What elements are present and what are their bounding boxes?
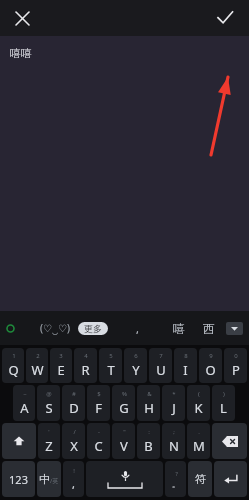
staticText: 6 bbox=[134, 352, 138, 360]
button[interactable]: @ bbox=[37, 385, 60, 421]
button[interactable]: 符 bbox=[188, 461, 212, 497]
staticText: . bbox=[198, 428, 200, 436]
button[interactable]: Close bbox=[6, 2, 38, 34]
staticText: 3 bbox=[59, 352, 63, 360]
staticText: 5 bbox=[109, 352, 113, 360]
button[interactable]: ( bbox=[187, 385, 210, 421]
staticText: 8 bbox=[184, 352, 188, 360]
button[interactable]: 更多 bbox=[78, 322, 108, 335]
staticText: 4 bbox=[84, 352, 88, 360]
staticText: /英 bbox=[50, 477, 59, 485]
staticText: 123 bbox=[9, 472, 28, 487]
staticText: 。 bbox=[172, 479, 180, 489]
staticText: C bbox=[94, 437, 103, 455]
button[interactable]: Backspace bbox=[212, 423, 247, 459]
staticText: & bbox=[147, 390, 152, 398]
staticText: 嘻 bbox=[173, 321, 185, 336]
button[interactable]: Space bbox=[86, 461, 163, 497]
button[interactable]: Expand candidates bbox=[226, 322, 243, 335]
button[interactable]: Confirm bbox=[209, 2, 241, 34]
staticText: M bbox=[193, 437, 205, 455]
button[interactable]: Enter bbox=[214, 461, 247, 497]
staticText: ' bbox=[48, 428, 50, 436]
button[interactable]: Shift bbox=[2, 423, 36, 459]
staticText: ! bbox=[73, 467, 75, 475]
button[interactable]: 西 bbox=[198, 321, 220, 336]
staticText: T bbox=[107, 361, 115, 379]
staticText: J bbox=[172, 399, 176, 417]
button[interactable]: 123 bbox=[2, 461, 35, 497]
staticText: P bbox=[232, 361, 240, 379]
button[interactable]: / bbox=[62, 423, 85, 459]
staticText: : bbox=[148, 428, 150, 436]
staticText: B bbox=[144, 437, 153, 455]
button[interactable]: , bbox=[130, 321, 145, 336]
button[interactable]: & bbox=[137, 385, 160, 421]
staticText: H bbox=[144, 399, 154, 417]
button[interactable]: % bbox=[112, 385, 135, 421]
button[interactable]: * bbox=[162, 385, 185, 421]
staticText: K bbox=[194, 399, 203, 417]
button[interactable]: 3 bbox=[50, 348, 72, 383]
button[interactable]: (♡‿♡) bbox=[38, 321, 73, 335]
staticText: W bbox=[31, 361, 44, 379]
button[interactable]: 8 bbox=[174, 348, 197, 383]
button[interactable]: $ bbox=[87, 385, 110, 421]
staticText: @ bbox=[46, 390, 52, 398]
button[interactable]: ; bbox=[162, 423, 185, 459]
button[interactable]: 9 bbox=[199, 348, 222, 383]
staticText: X bbox=[70, 437, 78, 455]
staticText: # bbox=[72, 390, 76, 398]
staticText: 更多 bbox=[84, 323, 102, 334]
staticText: V bbox=[120, 437, 128, 455]
staticText: S bbox=[45, 399, 53, 417]
staticText: * bbox=[172, 390, 176, 398]
staticText: 1 bbox=[12, 352, 16, 360]
button[interactable]: 嘻 bbox=[168, 321, 190, 336]
button[interactable]: # bbox=[62, 385, 85, 421]
button[interactable]: 4 bbox=[74, 348, 97, 383]
staticText: F bbox=[95, 399, 102, 417]
button[interactable]: ! bbox=[63, 461, 84, 497]
staticText: " bbox=[123, 428, 126, 436]
button[interactable]: . bbox=[187, 423, 210, 459]
staticText: 2 bbox=[36, 352, 40, 360]
button[interactable]: 6 bbox=[124, 348, 147, 383]
staticText: / bbox=[73, 428, 76, 436]
staticText: (♡‿♡) bbox=[40, 321, 71, 335]
staticText: - bbox=[98, 428, 100, 436]
button[interactable]: ' bbox=[38, 423, 60, 459]
staticText: U bbox=[156, 361, 166, 379]
staticText: 嘻嘻 bbox=[10, 46, 32, 60]
staticText: 7 bbox=[159, 352, 163, 360]
staticText: 西 bbox=[203, 321, 215, 336]
button[interactable]: ~ bbox=[13, 385, 35, 421]
staticText: A bbox=[20, 399, 29, 417]
staticText: E bbox=[57, 361, 65, 379]
staticText: ; bbox=[173, 428, 175, 436]
button[interactable]: " bbox=[112, 423, 135, 459]
button[interactable]: 0 bbox=[224, 348, 247, 383]
staticText: , bbox=[136, 321, 139, 336]
button[interactable]: ) bbox=[212, 385, 235, 421]
staticText: R bbox=[81, 361, 90, 379]
button[interactable]: 5 bbox=[99, 348, 122, 383]
button[interactable]: - bbox=[87, 423, 110, 459]
button[interactable]: Chinese English toggle bbox=[37, 461, 61, 497]
staticText: L bbox=[220, 399, 227, 417]
staticText: I bbox=[183, 361, 188, 379]
button[interactable]: 2 bbox=[26, 348, 48, 383]
staticText: % bbox=[122, 390, 127, 398]
staticText: ) bbox=[223, 390, 225, 398]
staticText: ( bbox=[198, 390, 200, 398]
staticText: Z bbox=[45, 437, 53, 455]
staticText: 9 bbox=[209, 352, 213, 360]
button[interactable]: ? bbox=[165, 461, 186, 497]
staticText: Q bbox=[8, 361, 19, 379]
staticText: $ bbox=[97, 390, 101, 398]
button[interactable]: 1 bbox=[2, 348, 24, 383]
button[interactable]: 7 bbox=[149, 348, 172, 383]
staticText: G bbox=[119, 399, 129, 417]
staticText: , bbox=[72, 476, 75, 491]
button[interactable]: : bbox=[137, 423, 160, 459]
